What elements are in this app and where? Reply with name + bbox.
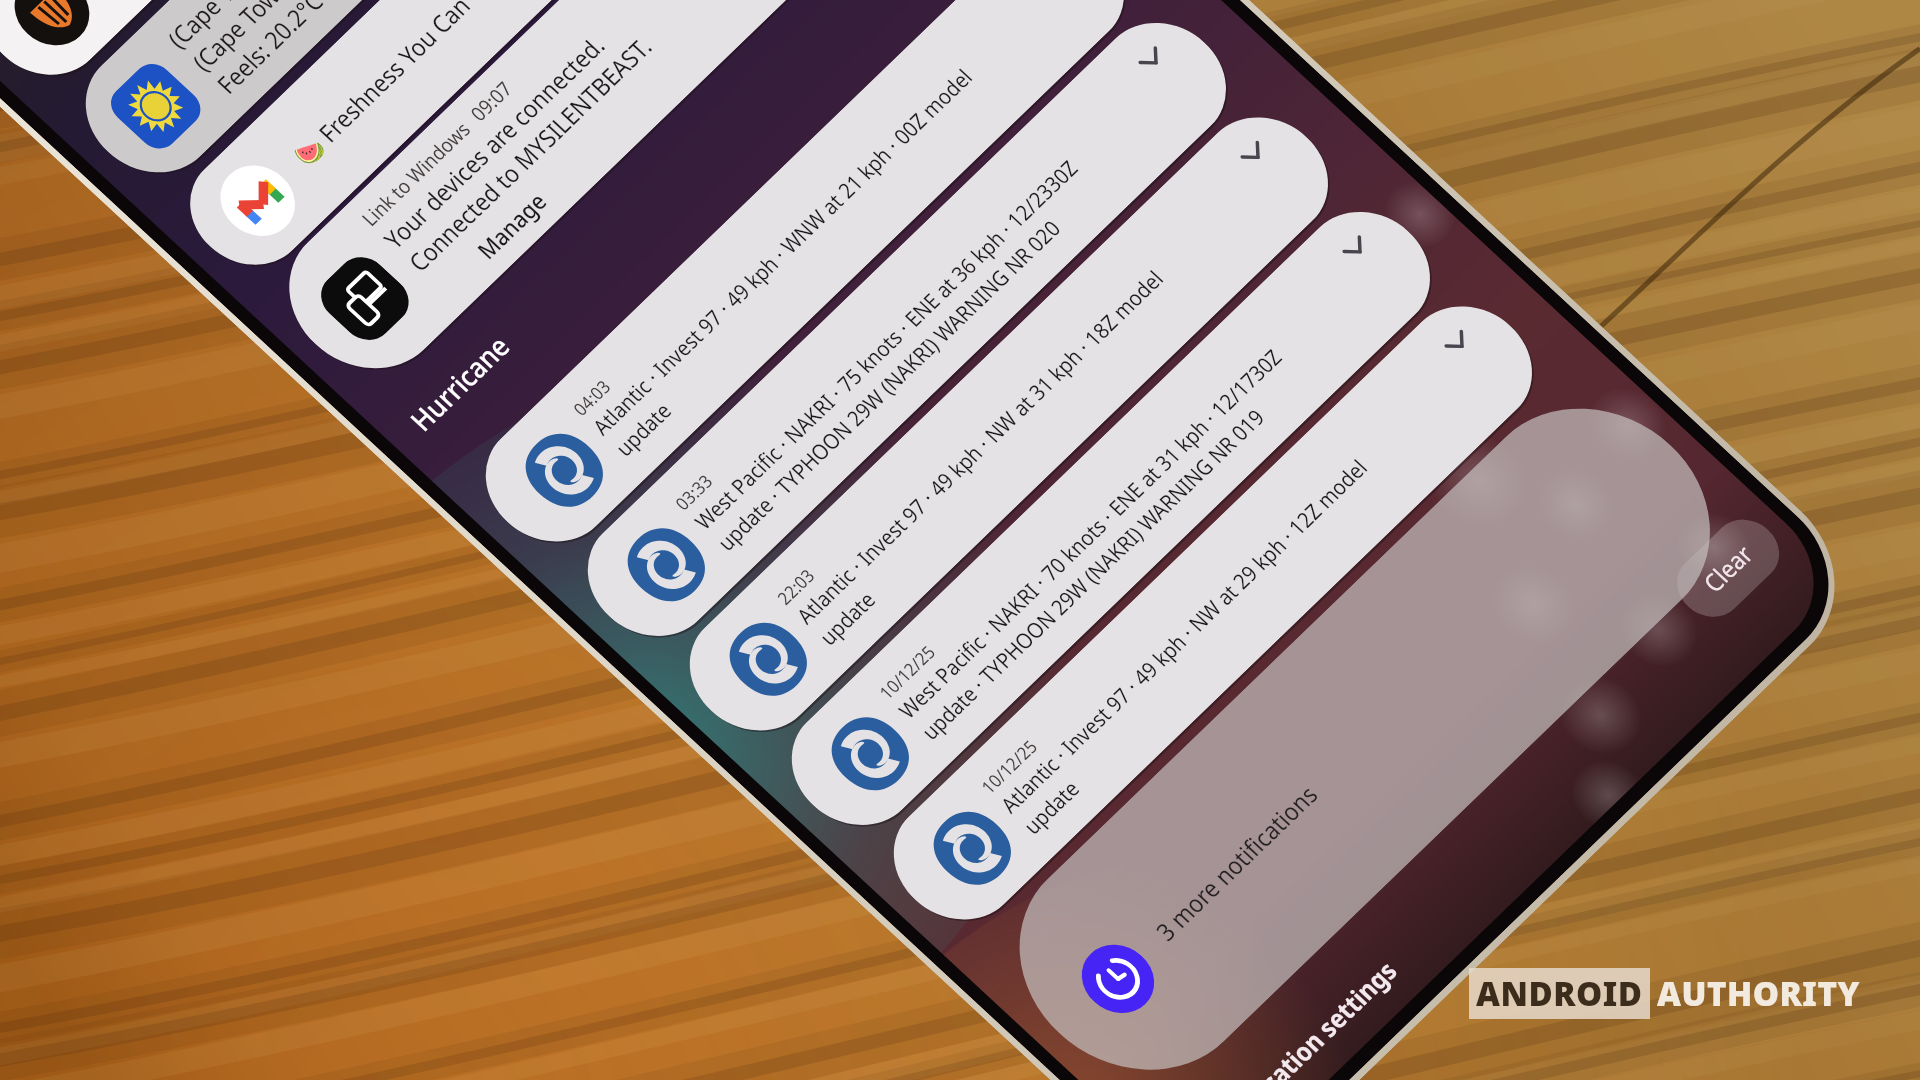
staticText: Connected to MYSILENTBEAST. <box>398 0 662 320</box>
button[interactable]: Link to Windows <box>242 0 985 506</box>
staticText: (Cape Town) <box>181 0 305 94</box>
staticText: ANDROID <box>1476 971 1643 1016</box>
staticText: 09:07 <box>461 69 522 133</box>
staticText: (Cape Town) <box>157 0 280 71</box>
button[interactable]: Notification settings <box>1200 920 1409 1080</box>
staticText: Clear <box>1692 530 1764 606</box>
staticText: update <box>605 387 682 471</box>
staticText: 03:33 <box>667 463 720 520</box>
button[interactable]: Manage <box>466 174 557 277</box>
button[interactable]: 10/12/25 <box>855 174 1571 1052</box>
staticText: 3 more notifications <box>1145 750 1328 975</box>
button[interactable]: Clear <box>1657 492 1799 644</box>
staticText: 04:03 <box>565 369 618 426</box>
staticText: West Pacific · NAKRI · 70 knots · ENE at… <box>888 275 1292 793</box>
staticText: 🍉 Freshness You Can Taste <box>283 0 525 210</box>
staticText: update · TYPHOON 29W (NAKRI) WARNING NR … <box>707 153 1070 617</box>
staticText: Atlantic · Invest 97 · 49 kph · NW at 29… <box>990 387 1378 884</box>
button[interactable]: 03:33 <box>549 0 1265 768</box>
staticText: 22:03 <box>769 558 822 615</box>
button[interactable]: 22:03 <box>651 0 1367 863</box>
staticText: AUTHORITY <box>1657 971 1860 1016</box>
button[interactable]: Expand notification <box>1429 316 1482 368</box>
staticText: update · TYPHOON 29W (NAKRI) WARNING NR … <box>911 342 1274 806</box>
button[interactable]: Expand notification <box>1225 127 1278 179</box>
button[interactable]: Expand notification <box>1327 222 1380 273</box>
staticText: Feels: 20.2°C <box>206 0 334 118</box>
button[interactable]: 3 more notifications <box>947 253 1782 1080</box>
staticText: Atlantic · Invest 97 · 49 kph · NW at 31… <box>786 198 1174 695</box>
staticText: 10/12/25 <box>973 726 1045 807</box>
staticText: Hurricane <box>397 310 522 454</box>
button[interactable]: (Cape Town) <box>45 0 766 305</box>
staticText: West Pacific · NAKRI · 75 knots · ENE at… <box>684 86 1088 604</box>
staticText: Messages <box>88 0 195 5</box>
staticText: Link to Windows <box>352 97 481 251</box>
button[interactable]: 🍉 Freshness You Can Taste <box>154 0 861 395</box>
staticText: update <box>809 576 886 660</box>
button[interactable]: 10/12/25 <box>753 80 1469 957</box>
button[interactable]: Discord <box>0 0 658 206</box>
staticText: Your devices are connected. <box>373 0 616 294</box>
button[interactable]: Expand notification <box>1123 33 1176 84</box>
staticText: update <box>1013 765 1090 849</box>
staticText: Atlantic · Invest 97 · 49 kph · WNW at 2… <box>582 0 982 509</box>
button[interactable]: 04:03 <box>447 0 1163 674</box>
staticText: 10/12/25 <box>871 631 943 712</box>
